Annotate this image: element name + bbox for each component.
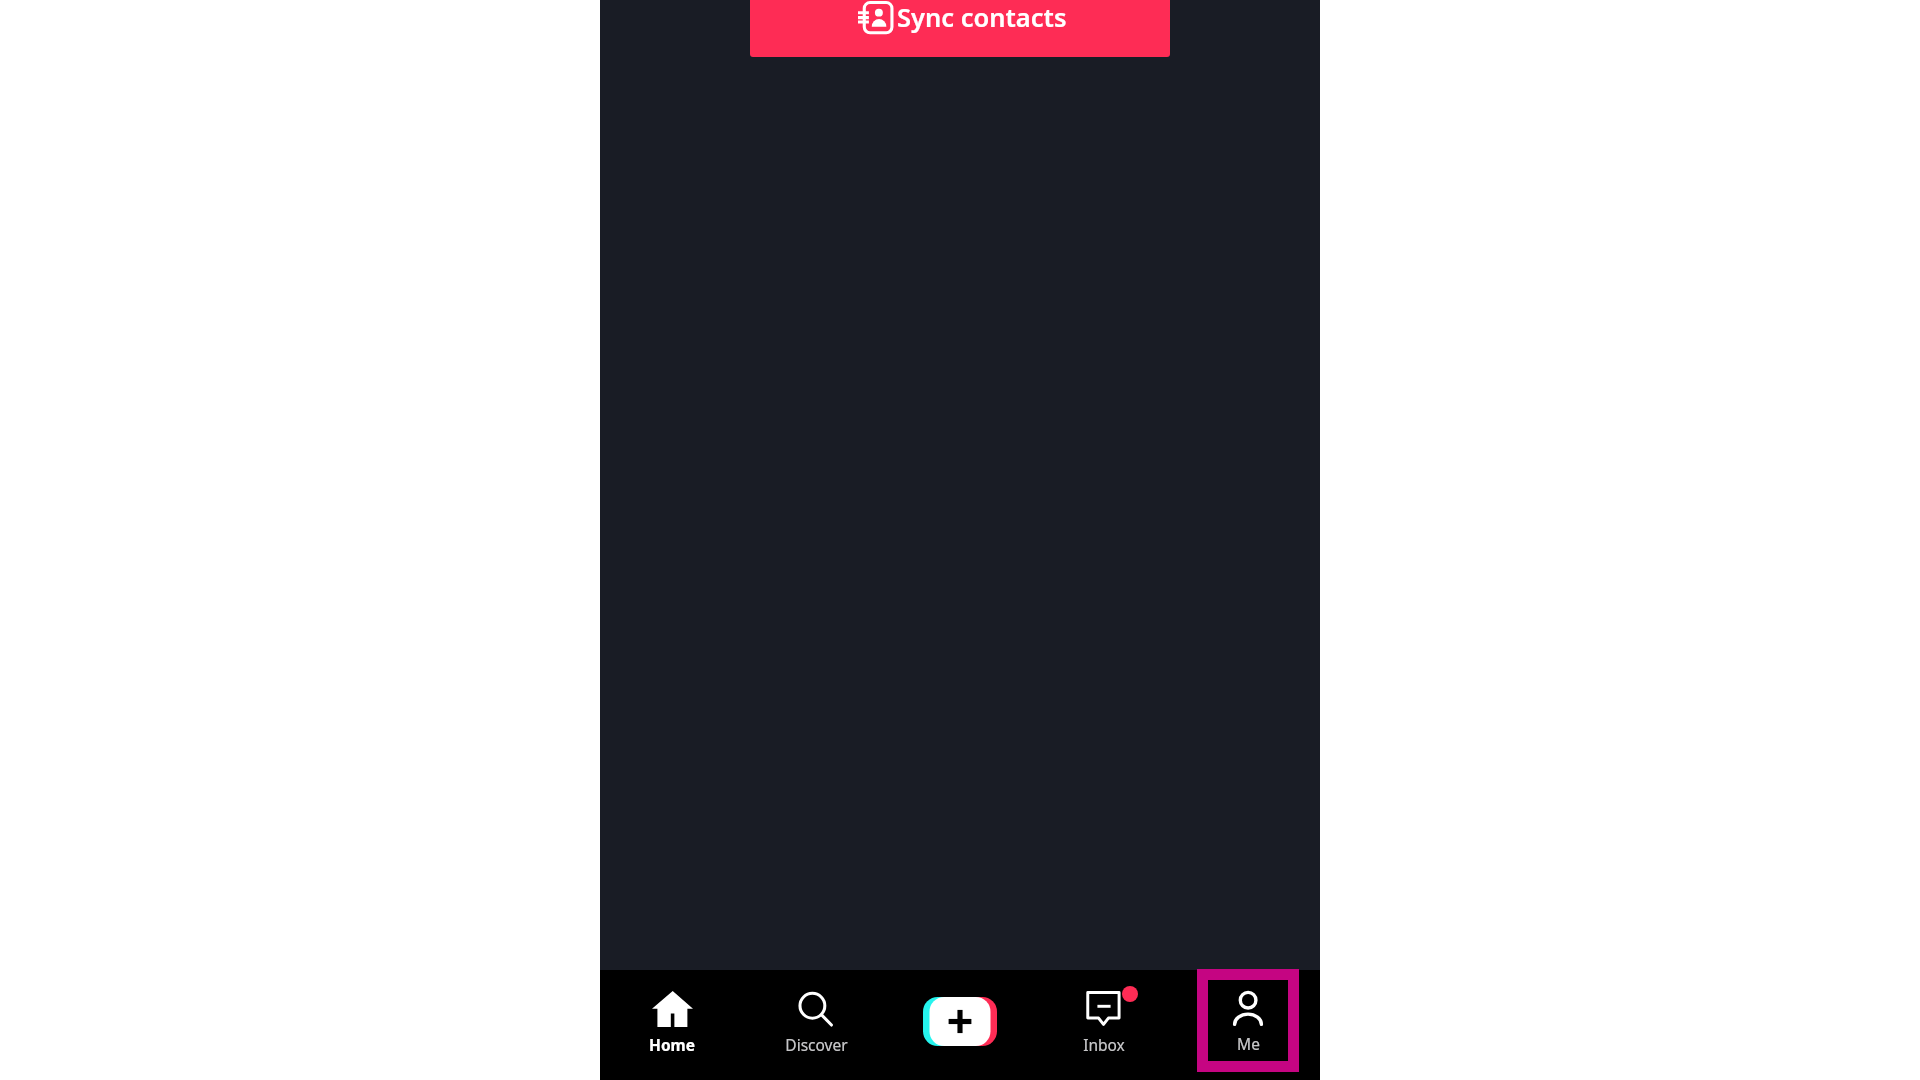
button[interactable]: Create — [923, 997, 997, 1046]
button[interactable]: Home — [600, 970, 744, 1080]
button[interactable]: Me — [1176, 970, 1320, 1080]
staticText: Discover — [785, 1034, 848, 1055]
staticText: Sync contacts — [897, 0, 1067, 35]
button[interactable]: Sync contacts — [750, 0, 1170, 57]
staticText: Inbox — [1083, 1034, 1125, 1055]
button[interactable]: Discover — [744, 970, 888, 1080]
staticText: Me — [1237, 1033, 1260, 1054]
staticText: Home — [649, 1034, 695, 1055]
button[interactable]: Inbox — [1032, 970, 1176, 1080]
